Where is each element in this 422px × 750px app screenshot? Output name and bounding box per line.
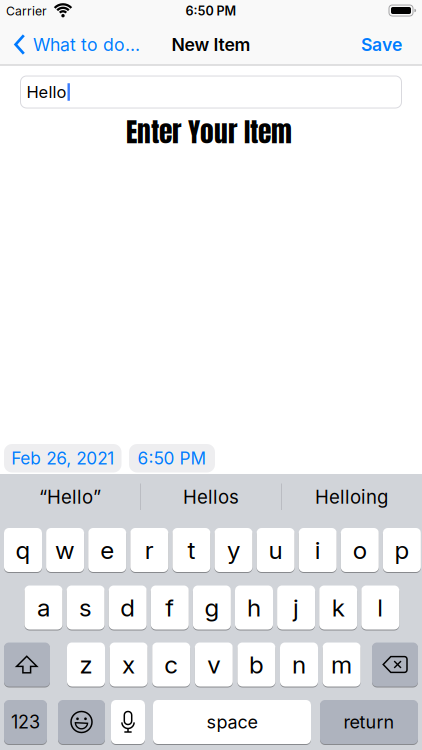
button[interactable]: o xyxy=(341,528,379,572)
button[interactable]: Save xyxy=(361,34,402,55)
staticText: p xyxy=(394,535,409,565)
staticText: t xyxy=(187,535,195,565)
staticText: g xyxy=(204,593,219,622)
button[interactable]: v xyxy=(195,642,233,686)
button[interactable]: Dictation xyxy=(111,700,145,744)
staticText: c xyxy=(164,650,178,679)
button[interactable]: Feb 26, 2021 xyxy=(4,444,121,472)
button[interactable]: Helloing xyxy=(291,480,411,514)
button[interactable]: c xyxy=(152,642,190,686)
staticText: What to do... xyxy=(33,34,140,55)
staticText: x xyxy=(122,650,135,679)
staticText: u xyxy=(269,535,283,565)
button[interactable]: r xyxy=(130,528,168,572)
button[interactable]: f xyxy=(151,585,189,629)
button[interactable]: “Hello” xyxy=(10,480,130,514)
button[interactable]: s xyxy=(67,585,105,629)
button[interactable]: Numbers xyxy=(4,700,47,744)
staticText: return xyxy=(343,711,394,733)
staticText: Hello xyxy=(26,82,66,102)
staticText: 6:50 PM xyxy=(137,448,206,469)
staticText: Save xyxy=(361,34,402,55)
button[interactable]: h xyxy=(235,585,273,629)
button[interactable]: m xyxy=(323,642,361,686)
button[interactable]: Back xyxy=(14,34,140,55)
button[interactable]: d xyxy=(109,585,147,629)
button[interactable]: w xyxy=(46,528,84,572)
staticText: d xyxy=(120,593,135,622)
staticText: a xyxy=(37,593,50,622)
staticText: New Item xyxy=(171,34,250,55)
staticText: Helloing xyxy=(315,486,388,508)
staticText: f xyxy=(165,593,174,622)
button[interactable]: u xyxy=(257,528,295,572)
staticText: j xyxy=(293,593,299,622)
staticText: b xyxy=(249,650,264,679)
staticText: 123 xyxy=(11,711,40,733)
button[interactable]: return xyxy=(320,700,418,744)
button[interactable]: 6:50 PM xyxy=(129,444,215,472)
button[interactable]: x xyxy=(110,642,148,686)
staticText: Hellos xyxy=(183,486,239,508)
button[interactable]: b xyxy=(237,642,275,686)
staticText: space xyxy=(206,711,257,733)
staticText: m xyxy=(331,650,352,679)
button[interactable]: space xyxy=(153,700,311,744)
staticText: e xyxy=(100,535,114,565)
button[interactable]: Emoji xyxy=(58,700,105,744)
staticText: w xyxy=(55,535,75,565)
button[interactable]: i xyxy=(299,528,337,572)
button[interactable]: t xyxy=(172,528,210,572)
staticText: q xyxy=(15,535,30,565)
button[interactable]: Shift xyxy=(4,642,50,686)
staticText: Carrier xyxy=(6,4,47,18)
staticText: i xyxy=(315,535,321,565)
button[interactable]: j xyxy=(277,585,315,629)
staticText: v xyxy=(207,650,220,679)
button[interactable]: z xyxy=(67,642,105,686)
staticText: n xyxy=(292,650,306,679)
staticText: r xyxy=(145,535,154,565)
staticText: o xyxy=(353,535,367,565)
button[interactable]: n xyxy=(280,642,318,686)
button[interactable]: a xyxy=(24,585,62,629)
staticText: y xyxy=(227,535,240,565)
staticText: z xyxy=(79,650,92,679)
button[interactable]: Delete xyxy=(372,642,418,686)
button[interactable]: l xyxy=(361,585,399,629)
staticText: “Hello” xyxy=(39,486,101,508)
staticText: 6:50 PM xyxy=(185,3,236,19)
staticText: h xyxy=(247,593,261,622)
button[interactable]: q xyxy=(4,528,42,572)
staticText: s xyxy=(79,593,92,622)
staticText: l xyxy=(377,593,383,622)
staticText: Enter Your Item xyxy=(126,111,292,152)
staticText: Feb 26, 2021 xyxy=(11,448,114,469)
button[interactable]: g xyxy=(193,585,231,629)
button[interactable]: y xyxy=(214,528,252,572)
button[interactable]: e xyxy=(88,528,126,572)
button[interactable]: p xyxy=(383,528,421,572)
staticText: k xyxy=(332,593,345,622)
button[interactable]: k xyxy=(319,585,357,629)
button[interactable]: Hellos xyxy=(151,480,271,514)
